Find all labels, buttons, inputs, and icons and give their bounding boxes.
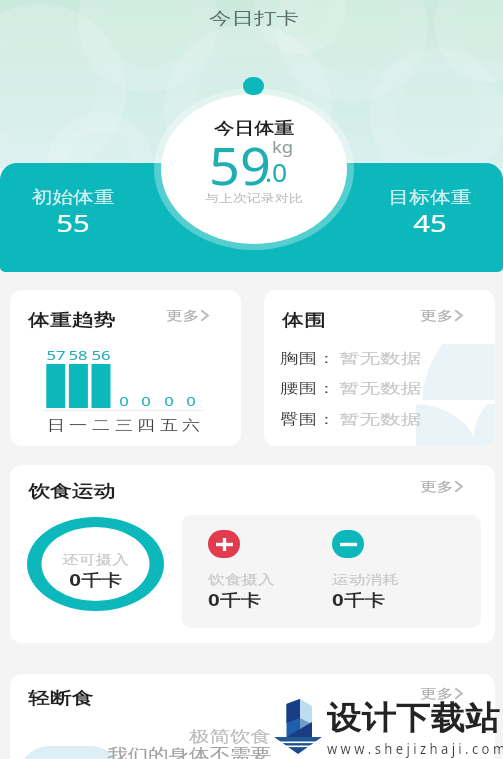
staticText: 臀围： xyxy=(280,411,336,429)
button[interactable]: 更多 xyxy=(417,474,466,498)
staticText: 腰围： xyxy=(280,380,336,398)
staticText: 56 xyxy=(83,346,119,364)
staticText: 58 xyxy=(60,346,96,364)
staticText: 三 xyxy=(106,417,142,435)
button[interactable]: 轻断食 xyxy=(10,674,495,759)
staticText: 轻断食 xyxy=(28,688,93,709)
staticText: 运动消耗 xyxy=(332,571,399,587)
staticText: 日 xyxy=(38,417,74,435)
staticText: 更多 xyxy=(420,307,453,323)
staticText: kg xyxy=(272,136,294,158)
staticText: 还可摄入 xyxy=(10,551,183,567)
staticText: 暂无数据 xyxy=(339,380,421,398)
staticText: 与上次记录对比 xyxy=(136,191,372,205)
staticText: 二 xyxy=(83,417,119,435)
staticText: 设计下载站 xyxy=(327,698,500,738)
staticText: 六 xyxy=(173,417,209,435)
staticText: 59 xyxy=(209,130,271,199)
button[interactable]: 更多 xyxy=(417,303,466,327)
button[interactable]: 饮食运动 xyxy=(10,465,495,643)
staticText: 极简饮食 xyxy=(10,727,271,747)
staticText: 今日体重 xyxy=(138,119,370,139)
button[interactable]: 饮食摄入 xyxy=(208,530,240,558)
staticText: 初始体重 xyxy=(10,187,136,208)
button[interactable]: 体重趋势 xyxy=(10,290,241,446)
staticText: 体围 xyxy=(282,310,325,331)
staticText: 胸围： xyxy=(280,350,336,368)
staticText: .0 xyxy=(265,155,288,189)
staticText: 0 xyxy=(106,392,142,410)
staticText: 饮食运动 xyxy=(28,481,115,502)
button[interactable]: 体围 xyxy=(264,290,495,446)
staticText: 今日打卡 xyxy=(131,8,377,29)
staticText: 一 xyxy=(60,417,96,435)
staticText: 45 xyxy=(367,206,493,239)
staticText: 0 xyxy=(173,392,209,410)
staticText: 0千卡 xyxy=(10,569,183,591)
staticText: 55 xyxy=(10,206,136,239)
button[interactable]: 更多 xyxy=(163,303,212,327)
button[interactable]: 运动消耗 xyxy=(332,530,364,558)
button[interactable]: 更多 xyxy=(417,681,466,705)
staticText: 饮食摄入 xyxy=(208,571,275,587)
staticText: 更多 xyxy=(166,307,199,323)
staticText: 我们的身体不需要 xyxy=(10,745,271,759)
staticText: 四 xyxy=(128,417,164,435)
staticText: 暂无数据 xyxy=(339,411,421,429)
staticText: w w w . s h e j i z h a j i . c o m xyxy=(327,739,503,758)
staticText: 0千卡 xyxy=(332,589,386,611)
staticText: 五 xyxy=(151,417,187,435)
staticText: 0 xyxy=(128,392,164,410)
staticText: 暂无数据 xyxy=(339,350,421,368)
staticText: 57 xyxy=(38,346,74,364)
staticText: 更多 xyxy=(420,478,453,494)
staticText: 更多 xyxy=(420,685,453,701)
staticText: 目标体重 xyxy=(367,187,493,208)
staticText: 0千卡 xyxy=(208,589,262,611)
staticText: 体重趋势 xyxy=(28,310,115,331)
staticText: 0 xyxy=(151,392,187,410)
